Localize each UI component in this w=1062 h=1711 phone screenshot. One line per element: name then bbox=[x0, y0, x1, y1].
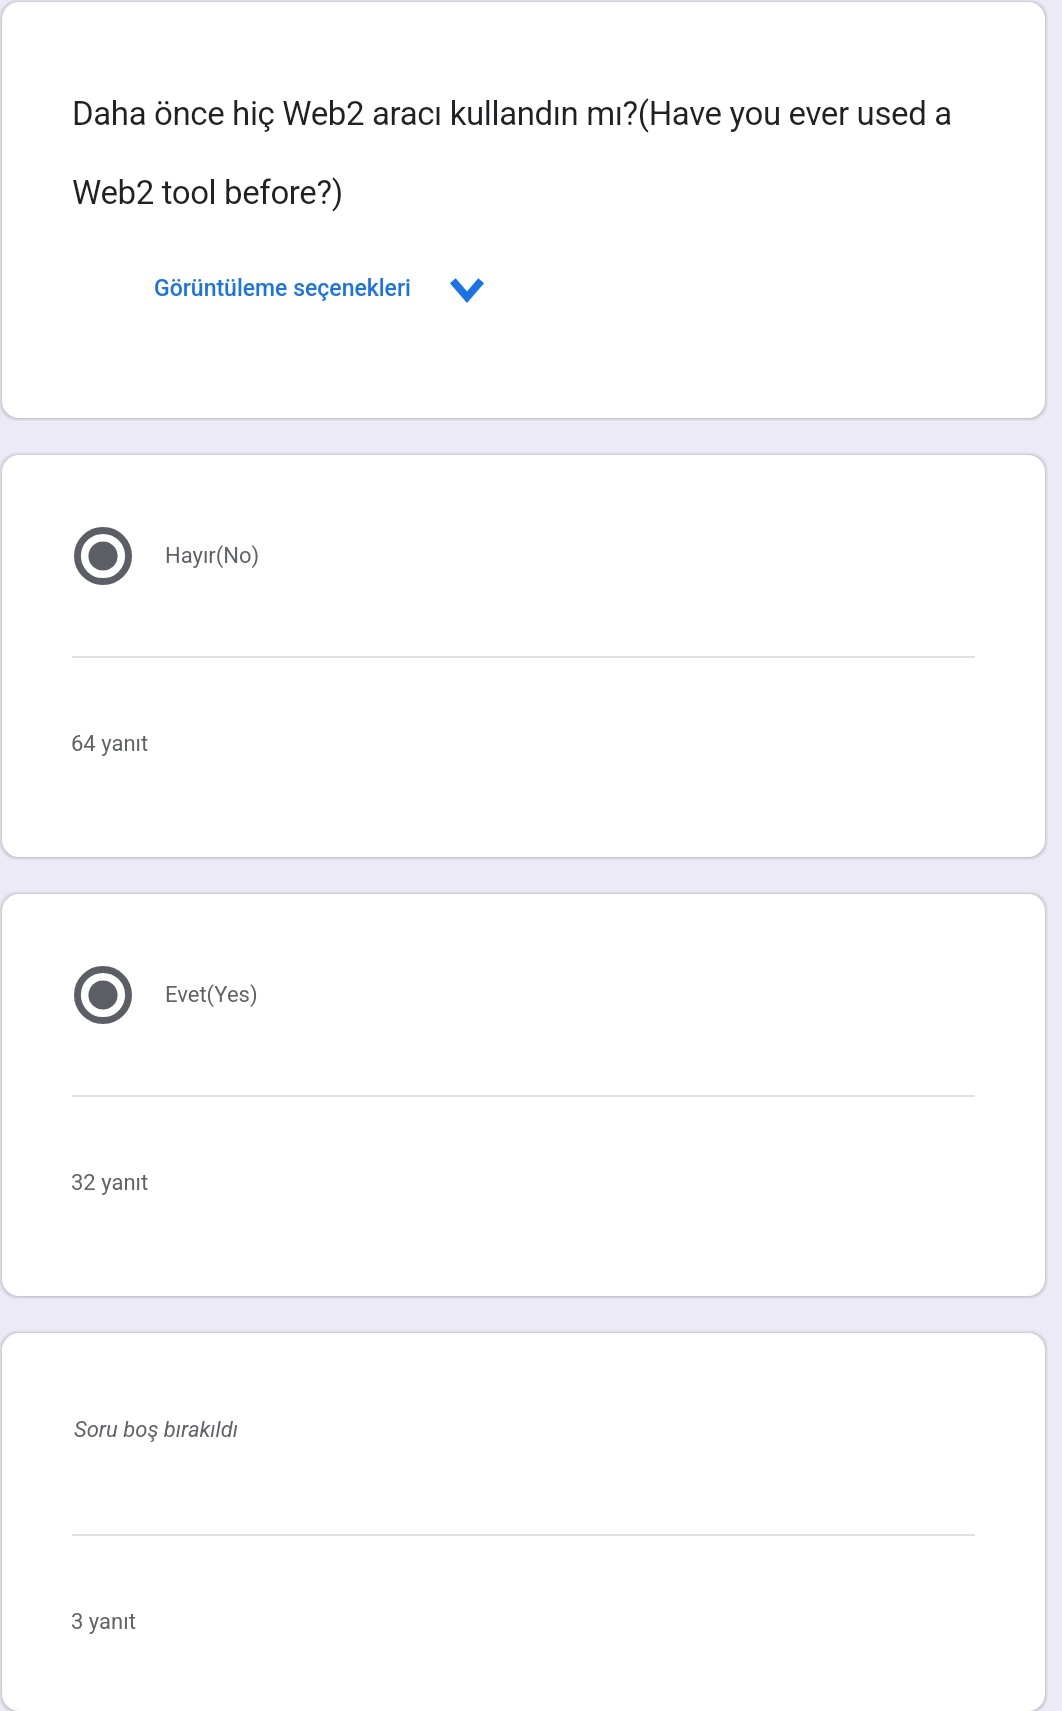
button[interactable]: Görüntüleme seçenekleri bbox=[154, 275, 485, 302]
staticText: Hayır(No) bbox=[165, 543, 260, 569]
button[interactable]: Hayır(No) bbox=[2, 455, 1045, 857]
button[interactable]: Hayır(No) bbox=[74, 527, 260, 585]
button[interactable]: Evet(Yes) bbox=[2, 894, 1045, 1296]
staticText: Evet(Yes) bbox=[165, 982, 258, 1008]
staticText: Daha önce hiç Web2 aracı kullandın mı?(H… bbox=[72, 94, 997, 212]
staticText: 3 yanıt bbox=[71, 1609, 136, 1635]
other: Expand display options bbox=[449, 277, 485, 301]
staticText: 32 yanıt bbox=[71, 1170, 149, 1196]
button[interactable]: Evet(Yes) bbox=[74, 966, 258, 1024]
staticText: Görüntüleme seçenekleri bbox=[154, 275, 411, 302]
staticText: 64 yanıt bbox=[71, 731, 149, 757]
staticText: Soru boş bırakıldı bbox=[74, 1417, 239, 1443]
button[interactable]: Soru boş bırakıldı bbox=[2, 1333, 1045, 1711]
